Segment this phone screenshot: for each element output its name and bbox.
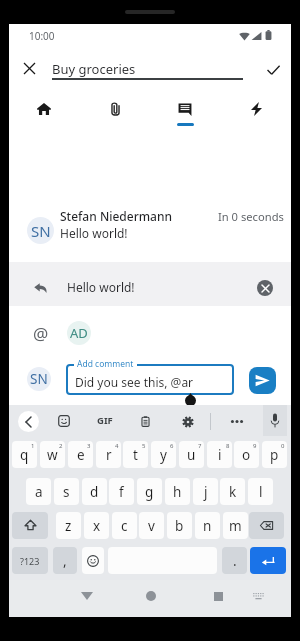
button[interactable]: e (68, 441, 93, 468)
button[interactable]: Enter (250, 547, 286, 574)
button[interactable]: Recent apps (206, 584, 230, 608)
button[interactable]: Backspace (249, 512, 284, 539)
button[interactable]: Switch keyboard (246, 584, 270, 608)
staticText: f (119, 483, 124, 501)
staticText: l (259, 483, 263, 501)
staticText: e (77, 446, 85, 464)
staticText: Stefan Niedermann (60, 208, 172, 224)
staticText: k (229, 483, 237, 501)
button[interactable]: Settings (177, 411, 199, 432)
button[interactable]: w (40, 441, 65, 468)
staticText: 10:00 (29, 29, 55, 43)
staticText: u (187, 446, 196, 464)
button[interactable]: n (195, 512, 220, 539)
staticText: Hello world! (67, 279, 135, 295)
button[interactable]: u (179, 441, 204, 468)
staticText: 2 (59, 442, 63, 450)
button[interactable]: l (248, 478, 273, 505)
button[interactable]: k (220, 478, 245, 505)
button[interactable]: Home (139, 584, 163, 608)
button[interactable]: , (53, 547, 77, 574)
button[interactable]: v (139, 512, 164, 539)
button[interactable]: Send (249, 367, 276, 394)
button[interactable]: GIF (91, 410, 118, 431)
button[interactable]: Sticker (53, 410, 75, 431)
button[interactable]: Save (259, 55, 288, 84)
button[interactable]: b (167, 512, 192, 539)
button[interactable]: t (123, 441, 148, 468)
staticText: o (242, 446, 251, 464)
button[interactable]: s (54, 478, 79, 505)
staticText: In 0 seconds (218, 209, 284, 224)
staticText: b (175, 517, 184, 535)
staticText: r (106, 446, 112, 464)
button[interactable]: Emoji (82, 547, 104, 574)
button[interactable]: x (84, 512, 109, 539)
staticText: g (145, 483, 154, 501)
button[interactable]: r (96, 441, 121, 468)
button[interactable]: o (234, 441, 259, 468)
staticText: i (218, 446, 222, 464)
button[interactable]: g (137, 478, 162, 505)
button[interactable]: a (26, 478, 51, 505)
button[interactable]: Comments (163, 90, 207, 128)
staticText: . (233, 552, 237, 570)
staticText: q (20, 446, 29, 464)
button[interactable]: p (262, 441, 287, 468)
staticText: 3 (87, 442, 91, 450)
button[interactable]: ?123 (12, 547, 48, 574)
staticText: 4 (115, 442, 119, 450)
button[interactable]: z (56, 512, 81, 539)
staticText: v (148, 517, 155, 535)
button[interactable]: q (12, 441, 37, 468)
staticText: 9 (253, 442, 257, 450)
button[interactable]: Shift (12, 512, 48, 539)
button[interactable]: h (165, 478, 190, 505)
button[interactable]: Attachments (93, 90, 137, 128)
button[interactable]: More options (226, 411, 247, 432)
button[interactable]: m (223, 512, 248, 539)
button[interactable]: Did you see this, @ar (66, 364, 234, 395)
button[interactable]: Dismiss reply (257, 280, 273, 296)
button[interactable]: Voice input (263, 405, 287, 436)
staticText: p (270, 446, 279, 464)
staticText: z (65, 517, 72, 535)
button[interactable]: i (207, 441, 232, 468)
staticText: j (204, 483, 208, 501)
button[interactable]: . (222, 547, 247, 574)
staticText: n (203, 517, 212, 535)
button[interactable]: Close (15, 54, 44, 83)
button[interactable]: d (82, 478, 107, 505)
button[interactable]: j (193, 478, 218, 505)
button[interactable]: Home (22, 90, 66, 128)
staticText: Hello world! (60, 225, 128, 241)
staticText: h (173, 483, 182, 501)
staticText: ?123 (20, 555, 40, 567)
button[interactable]: Activity (234, 90, 278, 128)
staticText: @ (33, 322, 49, 342)
staticText: 7 (198, 442, 202, 450)
button[interactable]: Clipboard (134, 411, 156, 432)
staticText: w (47, 446, 58, 464)
button[interactable]: f (109, 478, 134, 505)
staticText: d (90, 483, 99, 501)
staticText: a (35, 483, 43, 501)
staticText: AD (70, 324, 88, 342)
staticText: , (63, 552, 67, 570)
button[interactable]: c (112, 512, 137, 539)
staticText: 1 (31, 442, 35, 450)
staticText: x (93, 517, 101, 535)
staticText: t (133, 446, 138, 464)
button[interactable]: Back (18, 411, 39, 432)
staticText: 5 (142, 442, 146, 450)
staticText: 8 (226, 442, 230, 450)
staticText: 6 (170, 442, 174, 450)
staticText: SN (30, 370, 48, 388)
staticText: Add comment (77, 358, 134, 370)
button[interactable]: y (151, 441, 176, 468)
staticText: y (160, 446, 167, 464)
staticText: 0 (281, 442, 285, 450)
staticText: c (121, 517, 128, 535)
button[interactable]: Back (75, 584, 99, 608)
